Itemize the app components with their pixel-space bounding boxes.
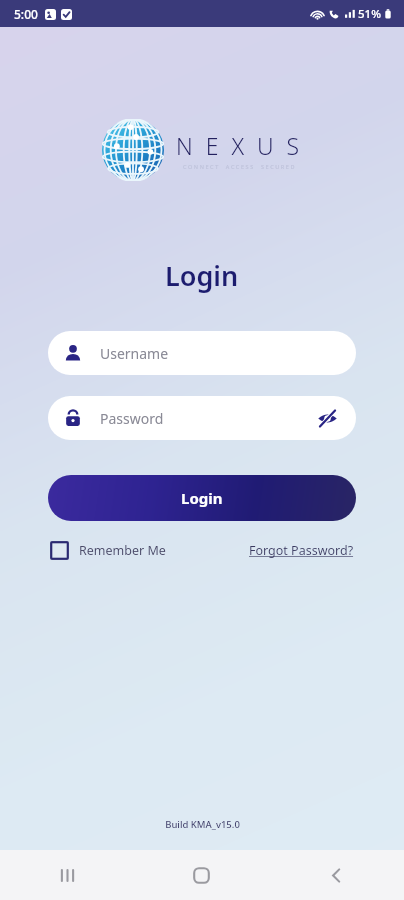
staticText: Username <box>100 344 169 363</box>
button[interactable]: Recents <box>0 850 134 900</box>
staticText: Remember Me <box>79 542 166 559</box>
button[interactable]: Show password <box>314 405 340 431</box>
staticText: Build KMA_v15.0 <box>165 818 240 831</box>
button[interactable]: Forgot Password? <box>249 542 354 559</box>
staticText: N E X U S <box>176 130 303 161</box>
button[interactable]: Login <box>48 475 356 521</box>
staticText: Login <box>165 257 239 294</box>
button[interactable]: Remember Me <box>50 541 166 560</box>
button[interactable]: Home <box>134 850 269 900</box>
staticText: 5:00 <box>14 6 38 22</box>
staticText: Forgot Password? <box>249 542 354 559</box>
staticText: CONNECT ACCESS SECURED <box>183 163 297 170</box>
staticText: 51% <box>358 6 381 22</box>
button[interactable]: Username <box>48 331 356 375</box>
button[interactable]: Back <box>269 850 404 900</box>
button[interactable]: Password <box>48 396 356 440</box>
staticText: Login <box>181 488 223 508</box>
staticText: Password <box>100 409 164 428</box>
